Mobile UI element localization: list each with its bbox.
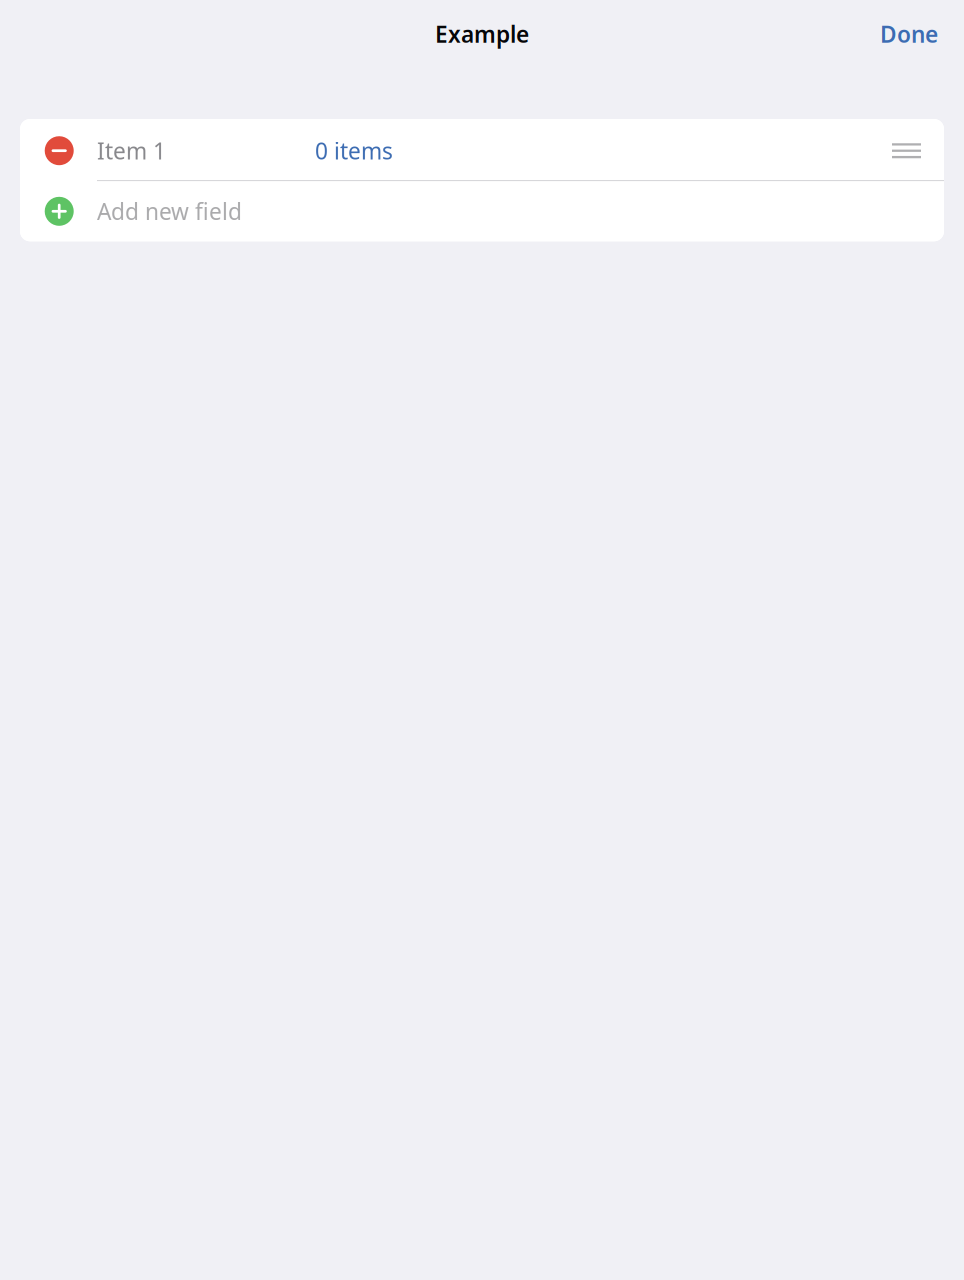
staticText: Example bbox=[435, 19, 529, 49]
button[interactable] bbox=[20, 119, 944, 180]
button[interactable]: Reorder Item 1 bbox=[884, 129, 929, 170]
staticText: Done bbox=[880, 19, 938, 49]
button[interactable]: Done bbox=[868, 9, 950, 59]
button[interactable]: Add new field bbox=[20, 181, 944, 241]
button[interactable]: Delete Item 1 bbox=[20, 134, 82, 165]
staticText: Item 1 bbox=[97, 136, 166, 166]
staticText: 0 items bbox=[315, 136, 393, 166]
staticText: Add new field bbox=[97, 196, 242, 226]
